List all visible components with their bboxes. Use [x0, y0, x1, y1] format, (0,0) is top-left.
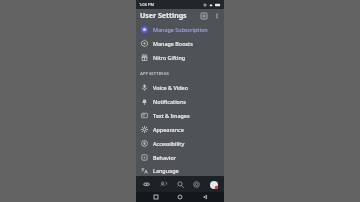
staticText: Appearance — [153, 126, 184, 133]
button[interactable]: Scan QR code — [199, 11, 208, 20]
staticText: APP SETTINGS — [140, 71, 169, 77]
button[interactable]: Search — [174, 178, 187, 191]
staticText: Accessibility — [153, 140, 185, 147]
staticText: Voice & Video — [153, 84, 188, 91]
staticText: Language — [153, 167, 179, 174]
button[interactable]: Behavior — [136, 150, 224, 164]
button[interactable]: Voice & Video — [136, 80, 224, 94]
button[interactable]: Home — [175, 192, 185, 202]
button[interactable]: Appearance — [136, 122, 224, 136]
button[interactable]: Manage Boosts — [136, 36, 224, 50]
button[interactable]: Notifications — [190, 178, 203, 191]
staticText: Text & Images — [153, 112, 190, 119]
button[interactable]: Nitro Gifting — [136, 50, 224, 64]
button[interactable]: Recents — [151, 192, 161, 202]
button[interactable]: Text & Images — [136, 108, 224, 122]
button[interactable]: Language — [136, 164, 224, 176]
staticText: 1:06 PM — [139, 2, 155, 7]
button[interactable]: Notifications — [136, 94, 224, 108]
button[interactable]: Friends — [157, 178, 170, 191]
button[interactable]: Manage Subscription — [136, 22, 224, 36]
staticText: Notifications — [153, 98, 186, 105]
button[interactable]: More options — [212, 11, 221, 20]
staticText: Behavior — [153, 154, 176, 161]
staticText: Nitro Gifting — [153, 54, 186, 61]
button[interactable]: Accessibility — [136, 136, 224, 150]
staticText: User Settings — [140, 11, 187, 21]
staticText: Manage Boosts — [153, 40, 193, 47]
button[interactable]: Home — [140, 178, 153, 191]
button[interactable]: Profile — [207, 178, 220, 191]
staticText: Manage Subscription — [153, 26, 208, 33]
button[interactable]: Back — [200, 192, 210, 202]
